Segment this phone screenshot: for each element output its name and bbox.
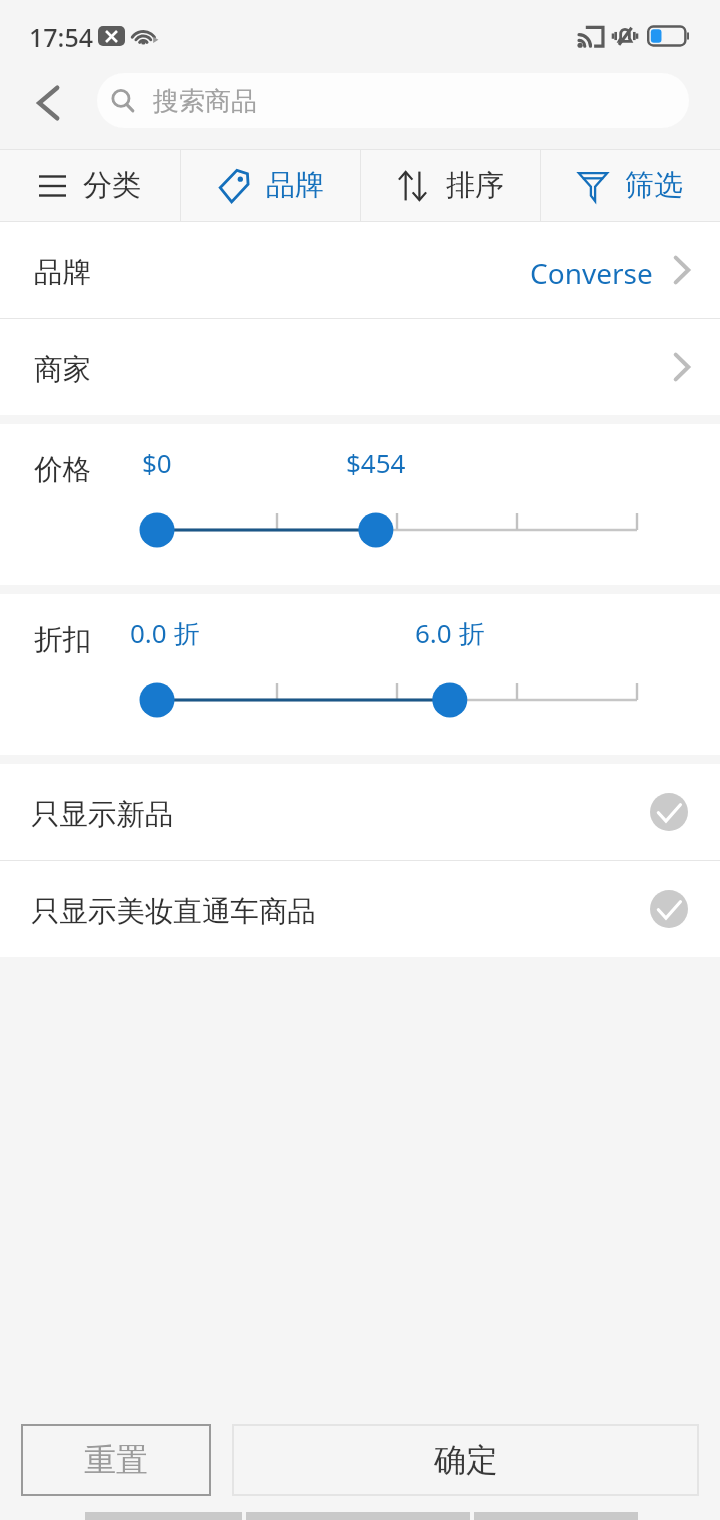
- button[interactable]: 商家: [0, 319, 720, 415]
- staticText: 6.0 折: [415, 615, 485, 651]
- staticText: 品牌: [266, 167, 324, 204]
- button[interactable]: 搜索商品: [97, 73, 689, 128]
- staticText: $0: [142, 445, 172, 480]
- button[interactable]: Back: [8, 70, 88, 136]
- staticText: 分类: [83, 167, 141, 204]
- button[interactable]: 价格 range slider: [0, 510, 720, 556]
- staticText: 价格: [34, 452, 91, 488]
- staticText: 只显示美妆直通车商品: [31, 894, 316, 930]
- staticText: 筛选: [625, 167, 683, 204]
- staticText: 商家: [34, 352, 91, 388]
- staticText: 折扣: [34, 622, 91, 658]
- staticText: 排序: [446, 167, 504, 204]
- staticText: 品牌: [34, 255, 91, 291]
- staticText: 0.0 折: [130, 615, 200, 651]
- staticText: 17:54: [29, 20, 94, 54]
- staticText: 重置: [84, 1440, 148, 1480]
- staticText: 搜索商品: [153, 85, 257, 118]
- button[interactable]: 折扣 range slider: [0, 680, 720, 726]
- button[interactable]: 只显示美妆直通车商品: [0, 861, 720, 957]
- button[interactable]: 筛选: [541, 149, 720, 222]
- button[interactable]: 只显示新品: [0, 764, 720, 860]
- button[interactable]: 品牌: [181, 149, 360, 222]
- staticText: 只显示新品: [31, 797, 174, 833]
- button[interactable]: 确定: [232, 1424, 699, 1496]
- button[interactable]: 品牌: [0, 222, 720, 318]
- button[interactable]: 重置: [21, 1424, 211, 1496]
- button[interactable]: 分类: [0, 149, 180, 222]
- staticText: Converse: [530, 254, 653, 292]
- staticText: $454: [346, 445, 406, 480]
- button[interactable]: 排序: [361, 149, 540, 222]
- staticText: 确定: [434, 1440, 498, 1480]
